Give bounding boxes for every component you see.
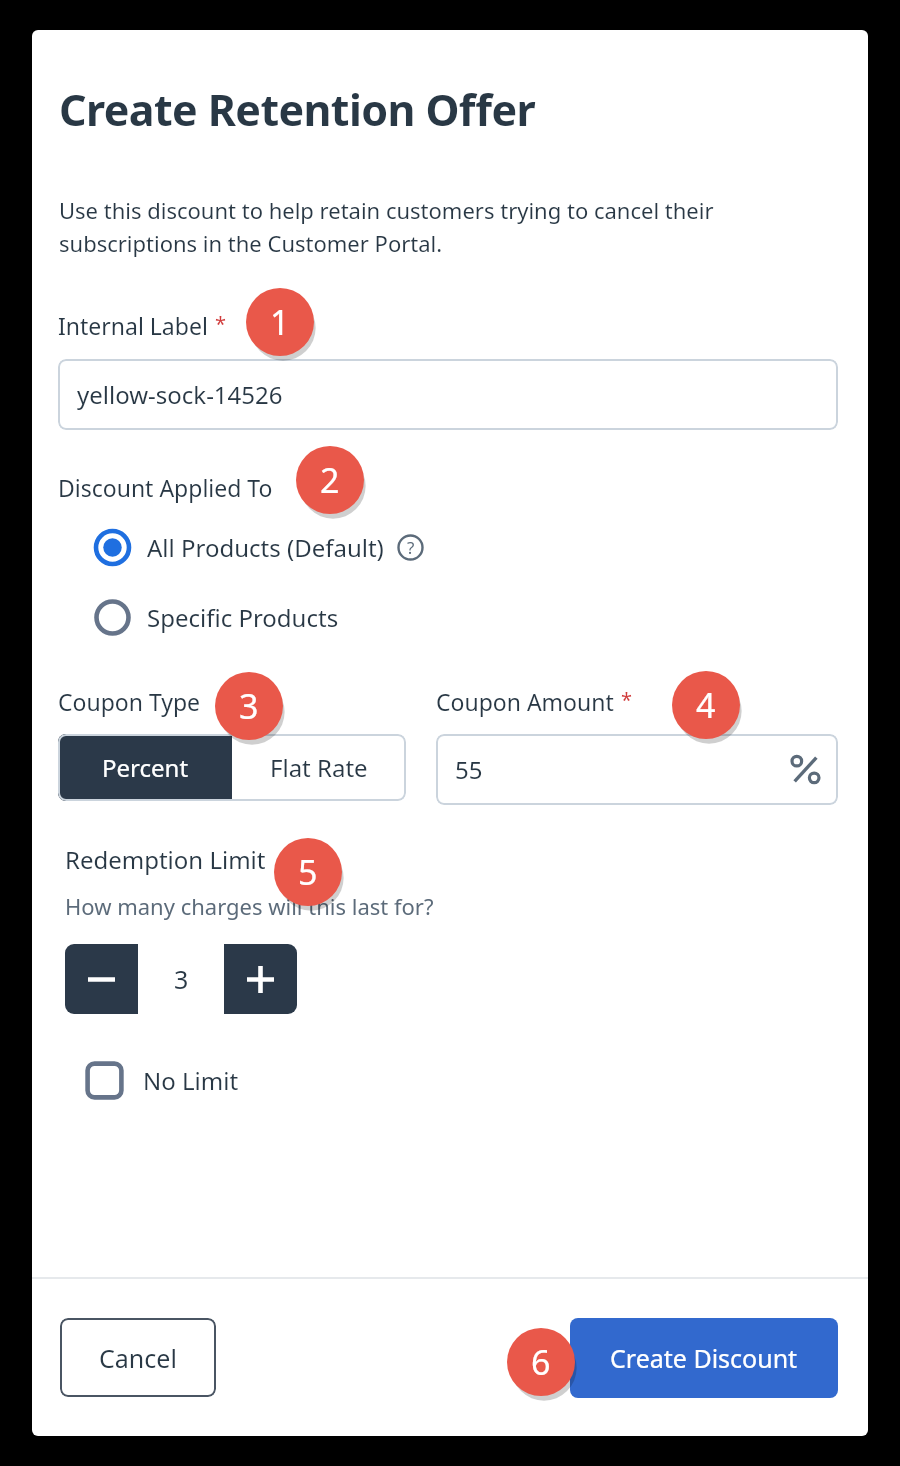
staticText: 1	[270, 299, 290, 345]
staticText: Discount Applied To	[58, 472, 273, 503]
staticText: Coupon Type	[58, 686, 201, 717]
button[interactable]: 3	[138, 944, 224, 1014]
staticText: 3	[239, 683, 259, 729]
button[interactable]: Cancel	[60, 1318, 216, 1397]
staticText: Redemption Limit	[65, 843, 266, 876]
staticText: *	[215, 310, 227, 337]
staticText: Specific Products	[147, 601, 339, 634]
staticText: Use this discount to help retain custome…	[59, 195, 844, 258]
staticText: 2	[320, 457, 340, 503]
staticText: Internal Label	[58, 310, 208, 341]
staticText: How many charges will this last for?	[65, 891, 434, 921]
staticText: No Limit	[143, 1064, 239, 1097]
staticText: *	[621, 686, 633, 713]
staticText: 55	[455, 753, 483, 786]
staticText: Cancel	[99, 1341, 177, 1375]
staticText: Flat Rate	[270, 751, 368, 784]
button[interactable]: yellow-sock-14526	[58, 359, 838, 430]
staticText: 6	[531, 1339, 551, 1385]
staticText: Percent	[102, 751, 189, 784]
button[interactable]: 55	[436, 734, 838, 805]
staticText: 3	[174, 962, 189, 996]
button[interactable]: No Limit	[85, 1061, 239, 1100]
button[interactable]: Help	[397, 534, 424, 561]
button[interactable]: Specific Products	[94, 599, 339, 636]
button[interactable]: Decrease	[65, 944, 138, 1014]
button[interactable]: Increase	[224, 944, 297, 1014]
staticText: 5	[298, 849, 318, 895]
staticText: ?	[407, 536, 415, 559]
button[interactable]: Flat Rate	[232, 734, 406, 801]
staticText: Create Retention Offer	[59, 80, 536, 139]
button[interactable]: Create Discount	[570, 1318, 838, 1398]
button[interactable]: All Products (Default)	[94, 529, 424, 566]
staticText: yellow-sock-14526	[77, 378, 283, 411]
staticText: All Products (Default)	[147, 531, 384, 564]
staticText: 4	[696, 682, 716, 728]
button[interactable]: Percent	[58, 734, 232, 801]
staticText: Coupon Amount	[436, 686, 614, 717]
staticText: Create Discount	[610, 1341, 798, 1375]
